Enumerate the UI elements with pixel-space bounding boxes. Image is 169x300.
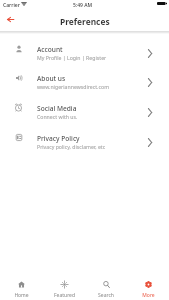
staticText: Search bbox=[98, 292, 114, 299]
button[interactable]: Featured bbox=[43, 281, 85, 299]
staticText: About us bbox=[37, 74, 66, 83]
staticText: Preferences bbox=[60, 16, 110, 27]
staticText: Account bbox=[37, 45, 63, 54]
button[interactable]: Search bbox=[85, 281, 127, 299]
button[interactable]: Social Media bbox=[0, 96, 169, 126]
staticText: Privacy policy, disclamer, etc bbox=[37, 143, 106, 150]
button[interactable]: Back bbox=[1, 10, 20, 29]
staticText: Privacy Policy bbox=[37, 134, 80, 143]
button[interactable]: More bbox=[127, 281, 169, 299]
staticText: Home bbox=[14, 292, 29, 299]
staticText: 5:49 AM bbox=[73, 2, 93, 9]
staticText: Featured bbox=[54, 292, 75, 299]
button[interactable]: Privacy Policy bbox=[0, 126, 169, 156]
staticText: www.nigeriannewsdirect.com bbox=[37, 83, 109, 90]
staticText: Social Media bbox=[37, 104, 77, 113]
staticText: My Profile | Login | Register bbox=[37, 54, 107, 61]
staticText: Carrier bbox=[3, 2, 20, 9]
staticText: Connect with us. bbox=[37, 113, 78, 120]
button[interactable]: Home bbox=[0, 281, 43, 299]
button[interactable]: About us bbox=[0, 66, 169, 96]
staticText: More bbox=[142, 292, 155, 299]
button[interactable]: Account bbox=[0, 37, 169, 67]
